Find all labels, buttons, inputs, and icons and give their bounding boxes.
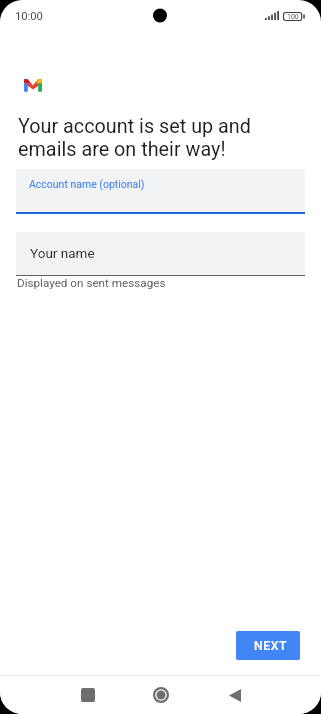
button[interactable]: Home [107,676,214,714]
staticText: Your name [30,245,95,261]
staticText: Displayed on sent messages [17,276,166,290]
staticText: Your account is set up and emails are on… [18,115,251,161]
staticText: 10:00 [15,10,43,23]
button[interactable]: NEXT [236,631,300,660]
button[interactable]: Back [214,676,321,714]
staticText: NEXT [254,639,287,653]
button[interactable]: Your name [16,232,305,275]
button[interactable]: Account name (optional) [16,169,305,212]
staticText: Account name (optional) [29,178,145,190]
button[interactable]: Recent apps [0,676,107,714]
staticText: 100 [287,13,299,21]
